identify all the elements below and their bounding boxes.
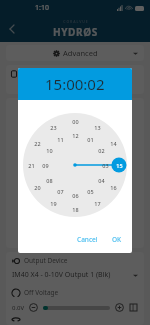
staticText: 14 bbox=[110, 140, 117, 147]
staticText: 09 bbox=[42, 162, 49, 169]
staticText: C O R A L V U E bbox=[63, 19, 88, 24]
staticText: Advanced bbox=[63, 48, 98, 58]
button[interactable]: Keypad bbox=[129, 303, 138, 312]
staticText: OK bbox=[112, 235, 122, 244]
staticText: 19 bbox=[50, 200, 57, 207]
staticText: 15 bbox=[116, 162, 123, 169]
staticText: 07 bbox=[57, 188, 64, 195]
staticText: 01 bbox=[87, 136, 94, 143]
staticText: 16 bbox=[110, 184, 117, 191]
staticText: Cancel bbox=[77, 235, 98, 244]
button[interactable]: Increase bbox=[115, 303, 124, 312]
staticText: 15:00:02 bbox=[45, 74, 105, 94]
button[interactable]: Advanced bbox=[6, 45, 144, 61]
staticText: 18 bbox=[72, 206, 79, 213]
staticText: HYDRØS bbox=[53, 25, 98, 39]
staticText: 05 bbox=[87, 188, 94, 195]
staticText: 20 bbox=[34, 184, 41, 191]
staticText: 23 bbox=[50, 124, 57, 131]
staticText: 10 bbox=[46, 147, 53, 154]
staticText: 04 bbox=[98, 177, 105, 184]
staticText: 22 bbox=[34, 140, 41, 147]
button[interactable]: Back bbox=[5, 22, 19, 36]
staticText: 00 bbox=[72, 118, 79, 125]
staticText: Output Device bbox=[24, 256, 68, 265]
button[interactable]: Decrease bbox=[29, 303, 38, 312]
staticText: 17 bbox=[94, 200, 101, 207]
staticText: Off Voltage bbox=[24, 288, 59, 297]
button[interactable]: OK bbox=[108, 232, 126, 247]
staticText: 06 bbox=[72, 192, 79, 199]
staticText: 11 bbox=[57, 136, 64, 143]
button[interactable]: Cancel bbox=[73, 232, 102, 247]
staticText: 02 bbox=[98, 147, 105, 154]
staticText: 0.0V bbox=[12, 304, 25, 312]
staticText: 21 bbox=[28, 162, 35, 169]
staticText: 03 bbox=[102, 162, 109, 169]
staticText: 08 bbox=[46, 177, 53, 184]
staticText: 13 bbox=[94, 124, 101, 131]
staticText: 1:10 bbox=[35, 3, 49, 13]
staticText: IM40 X4 - 0-10V Output 1 (Blk) bbox=[12, 270, 111, 280]
button[interactable]: IM40 X4 - 0-10V Output 1 (Blk) bbox=[12, 270, 138, 280]
staticText: 12 bbox=[72, 132, 79, 139]
